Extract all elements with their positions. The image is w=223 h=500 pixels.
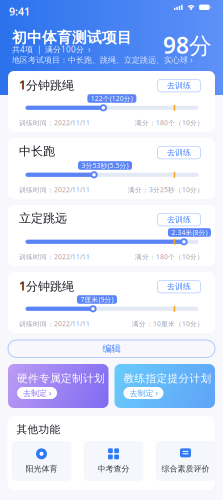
staticText: 中长跑 [19,144,55,159]
staticText: 2.34米(8分) [171,228,207,237]
staticText: 教练指定提分计划 [123,372,211,385]
staticText: 满分：10厘米（10分） [132,319,204,328]
staticText: 去训练 [167,148,191,157]
button[interactable]: 去训练 [157,79,200,92]
button[interactable]: 去训练 [157,146,200,159]
button[interactable]: 综合素质评价 [155,441,215,481]
button[interactable]: 去训练 [157,280,200,293]
staticText: 训练时间：2022/11/11 [19,118,90,127]
staticText: 满分：3分25秒（10分） [128,185,204,194]
staticText: 去训练 [167,215,191,224]
staticText: 98分 [163,30,212,60]
staticText: 训练时间：2022/11/11 [19,319,90,328]
staticText: 初中体育测试项目 [12,28,132,46]
button[interactable]: 阳光体育 [11,441,71,481]
staticText: 训练时间：2022/11/11 [19,185,90,194]
staticText: 其他功能 [16,423,60,436]
staticText: 122个(120分) [91,94,133,103]
staticText: 综合素质评价 [161,464,209,474]
staticText: 地区考试项目：中长跑、跳绳、立定跳远、实心球 › [12,54,192,65]
button[interactable]: 编辑 [8,340,215,357]
staticText: 立定跳远 [19,211,67,226]
staticText: 去制定 › [129,388,157,398]
staticText: 3分53秒(5.5分) [81,161,128,170]
staticText: 去制定 › [23,388,51,398]
staticText: 1分钟跳绳 [19,77,74,93]
staticText: 去训练 [167,282,191,291]
button[interactable]: 去训练 [157,213,200,226]
button[interactable]: 硬件专属定制计划 [8,364,108,408]
button[interactable]: 中考查分 [83,441,143,481]
staticText: 满分：180个（10分） [135,252,204,261]
staticText: 中考查分 [97,464,129,474]
staticText: 7厘米(9分) [80,295,113,304]
staticText: 共4项 | 满分100分 › [12,44,90,55]
staticText: 满分：180个（10分） [135,118,204,127]
staticText: 去训练 [167,81,191,90]
staticText: 编辑 [102,343,120,354]
staticText: 1分钟跳绳 [19,278,74,294]
staticText: 硬件专属定制计划 [17,372,105,385]
staticText: 训练时间：2022/11/11 [19,252,90,261]
staticText: 阳光体育 [25,464,57,474]
staticText: 9:41 [9,4,30,19]
button[interactable]: 教练指定提分计划 [114,364,215,408]
